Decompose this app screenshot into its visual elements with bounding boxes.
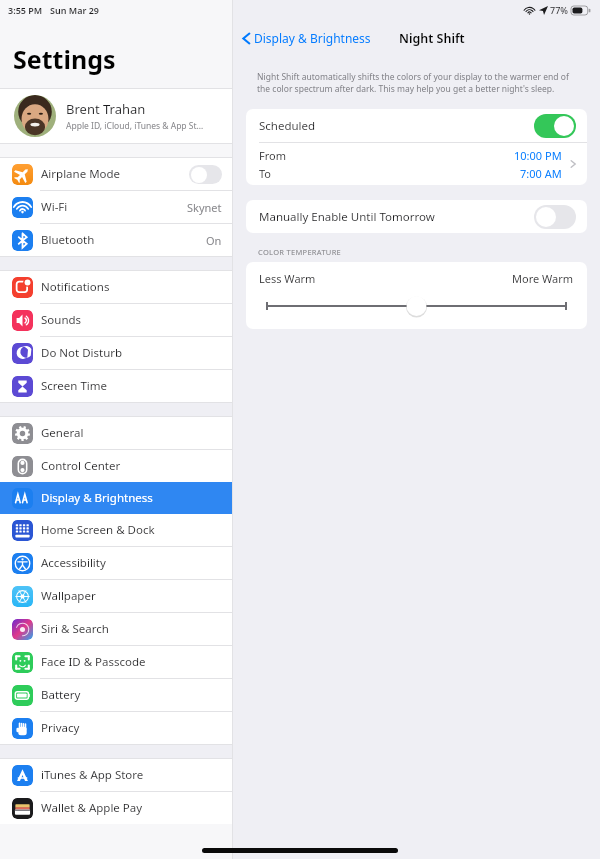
staticText: Do Not Disturb [41, 345, 222, 361]
button[interactable]: Airplane Mode [0, 158, 232, 190]
staticText: 10:00 PM [514, 148, 562, 163]
button[interactable]: Wi-Fi [0, 191, 232, 223]
staticText: Bluetooth [41, 232, 206, 248]
staticText: Wallpaper [41, 588, 222, 604]
staticText: Apple ID, iCloud, iTunes & App St… [66, 120, 204, 132]
staticText: Airplane Mode [41, 166, 189, 182]
button[interactable]: From [246, 143, 587, 185]
button[interactable]: Do Not Disturb [0, 337, 232, 369]
staticText: COLOR TEMPERATURE [258, 247, 342, 257]
staticText: Privacy [41, 720, 222, 736]
staticText: Battery [41, 687, 222, 703]
staticText: Night Shift automatically shifts the col… [257, 71, 580, 95]
button[interactable]: Privacy [0, 712, 232, 744]
button[interactable]: Battery [0, 679, 232, 711]
staticText: Less Warm [259, 271, 316, 286]
button[interactable]: Wallpaper [0, 580, 232, 612]
button[interactable]: Bluetooth [0, 224, 232, 256]
staticText: 7:00 AM [520, 166, 562, 181]
staticText: Face ID & Passcode [41, 654, 222, 670]
button[interactable]: Siri & Search [0, 613, 232, 645]
button[interactable]: Manually Enable Until Tomorrow toggle [534, 205, 576, 229]
staticText: Siri & Search [41, 621, 222, 637]
button[interactable]: Display & Brightness [240, 30, 371, 46]
staticText: Brent Trahan [66, 100, 146, 118]
staticText: General [41, 425, 222, 441]
button[interactable]: Wallet & Apple Pay [0, 792, 232, 824]
staticText: Home Screen & Dock [41, 522, 222, 538]
staticText: Settings [13, 42, 116, 76]
button[interactable]: iTunes & App Store [0, 759, 232, 791]
staticText: Skynet [187, 200, 222, 215]
staticText: Notifications [41, 279, 222, 295]
button[interactable]: General [0, 417, 232, 449]
button[interactable]: Screen Time [0, 370, 232, 402]
staticText: On [206, 233, 222, 248]
button[interactable]: Home Screen & Dock [0, 514, 232, 546]
staticText: Wallet & Apple Pay [41, 800, 222, 816]
button[interactable]: Face ID & Passcode [0, 646, 232, 678]
button[interactable]: Notifications [0, 271, 232, 303]
staticText: 3:55 PM [8, 4, 43, 16]
staticText: To [259, 166, 272, 181]
button[interactable]: Display & Brightness [0, 482, 232, 514]
staticText: Manually Enable Until Tomorrow [259, 209, 534, 225]
button[interactable]: Scheduled toggle [534, 114, 576, 138]
staticText: From [259, 148, 286, 163]
button[interactable]: Color temperature slider [259, 295, 574, 317]
button[interactable]: Accessibility [0, 547, 232, 579]
button[interactable]: Control Center [0, 450, 232, 482]
staticText: Sun Mar 29 [50, 4, 99, 16]
staticText: Wi-Fi [41, 199, 187, 215]
staticText: Display & Brightness [254, 30, 371, 46]
staticText: Accessibility [41, 555, 222, 571]
button[interactable]: Airplane Mode toggle [189, 165, 222, 184]
staticText: Control Center [41, 458, 222, 474]
staticText: 77% [550, 4, 568, 16]
staticText: Screen Time [41, 378, 222, 394]
staticText: iTunes & App Store [41, 767, 222, 783]
staticText: Scheduled [259, 118, 534, 134]
staticText: Sounds [41, 312, 222, 328]
staticText: Display & Brightness [41, 490, 222, 506]
button[interactable]: Sounds [0, 304, 232, 336]
button[interactable]: Brent Trahan [0, 89, 232, 143]
button[interactable]: Manually Enable Until Tomorrow [246, 200, 587, 233]
staticText: Night Shift [399, 30, 465, 47]
staticText: More Warm [512, 271, 574, 286]
button[interactable]: Scheduled [246, 109, 587, 142]
